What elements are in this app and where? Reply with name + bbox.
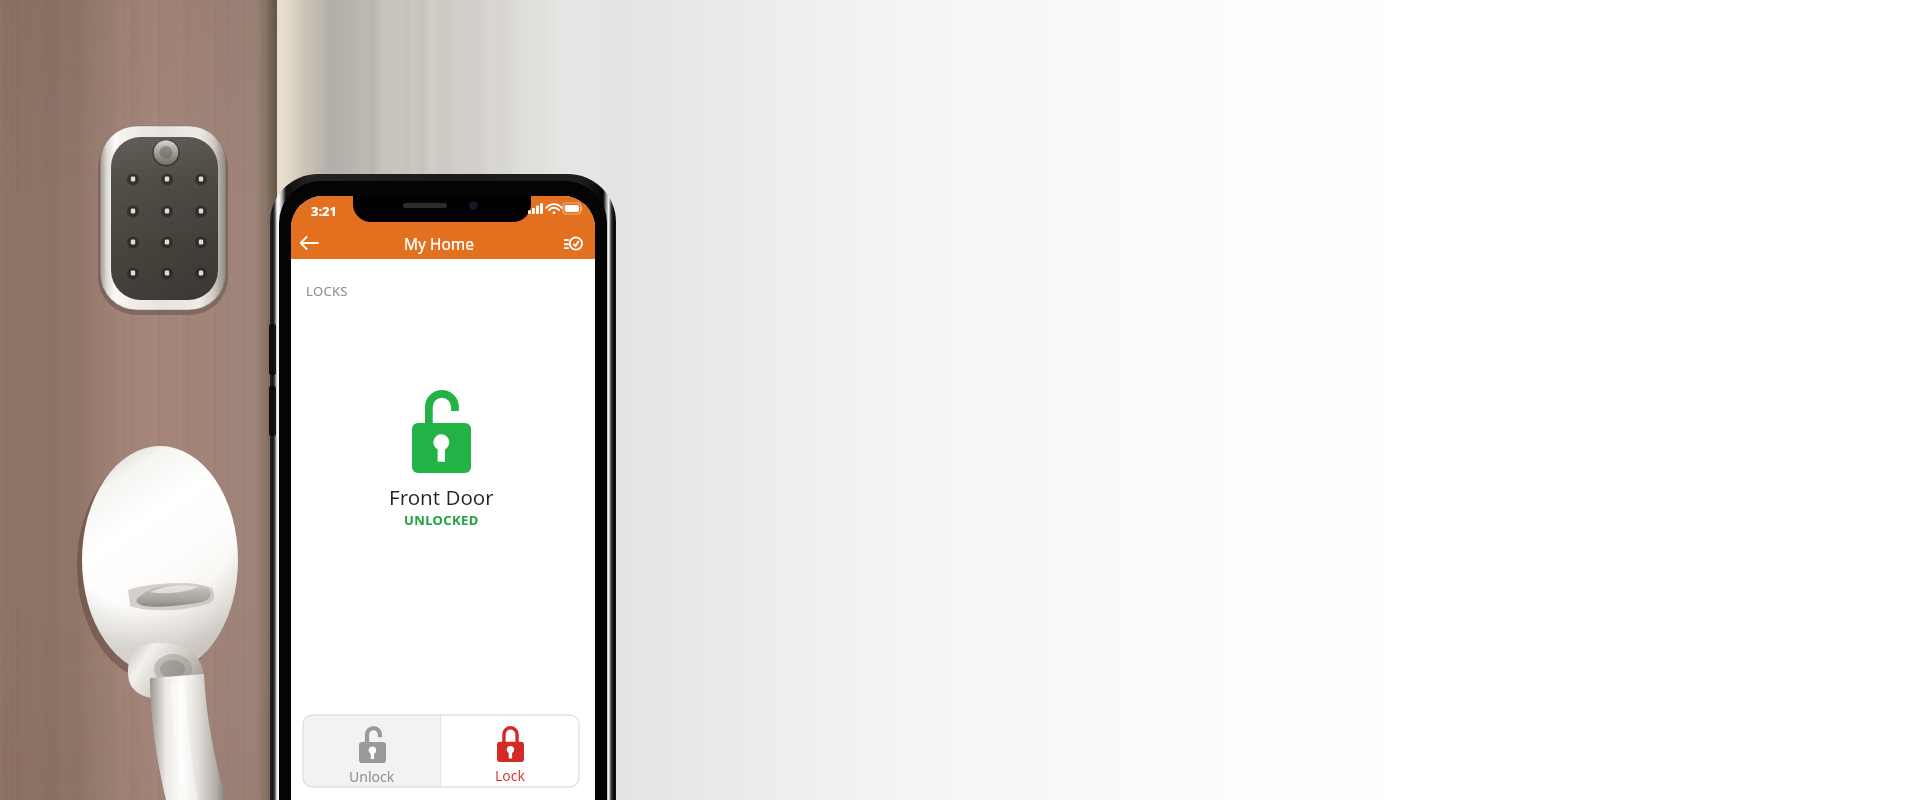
button[interactable]: Filter list [557,227,589,259]
staticText: Lock [495,766,526,785]
staticText: 3:21 [311,202,337,220]
button[interactable]: Front Door [321,390,561,529]
staticText: Unlock [349,767,395,786]
staticText: Front Door [389,483,494,511]
staticText: LOCKS [306,282,348,300]
staticText: UNLOCKED [404,511,479,529]
button[interactable]: Unlock [303,715,440,787]
staticText: My Home [323,233,555,254]
button[interactable]: Back [293,227,325,259]
button[interactable]: Lock [441,715,579,787]
